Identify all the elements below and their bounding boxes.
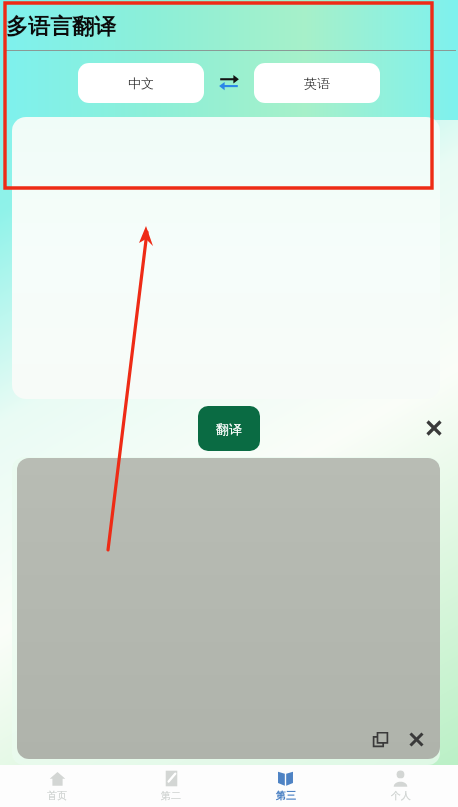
button[interactable]: Copy result [17,458,440,759]
staticText: 多语言翻译 [6,13,116,41]
staticText: 第三 [276,789,296,802]
staticText: 中文 [128,75,154,91]
button[interactable]: 第三 [228,765,343,807]
button[interactable]: Swap languages [216,70,242,96]
button[interactable]: 首页 [0,765,114,807]
staticText: 英语 [304,75,330,91]
staticText: 第二 [161,789,181,802]
button[interactable]: Clear input [419,413,449,443]
button[interactable]: 第二 [114,765,228,807]
button[interactable]: 翻译 [198,406,260,451]
staticText: 首页 [47,789,67,802]
button[interactable]: 英语 [254,63,380,103]
button[interactable]: Copy result [366,725,394,753]
staticText: 个人 [391,789,411,802]
button[interactable]: 个人 [343,765,458,807]
button[interactable]: Clear result [402,725,430,753]
button[interactable]: 中文 [78,63,204,103]
button[interactable] [12,117,440,399]
staticText: 翻译 [216,421,242,437]
